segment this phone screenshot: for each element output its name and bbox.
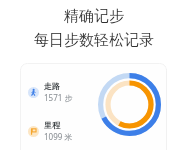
staticText: 每日步数轻松记录	[34, 31, 154, 50]
staticText: 精确记步	[64, 7, 124, 26]
staticText: 走路	[44, 81, 60, 91]
button[interactable]: Walking	[26, 80, 75, 104]
staticText: 里程	[44, 120, 60, 130]
other: Distance	[28, 126, 39, 137]
button[interactable]: Distance	[26, 119, 75, 143]
button[interactable]: Walking	[20, 63, 167, 150]
other: Walking	[28, 87, 39, 98]
staticText: 1571 步	[44, 92, 73, 103]
staticText: 1099 米	[44, 131, 73, 142]
other: Activity rings	[98, 73, 161, 136]
